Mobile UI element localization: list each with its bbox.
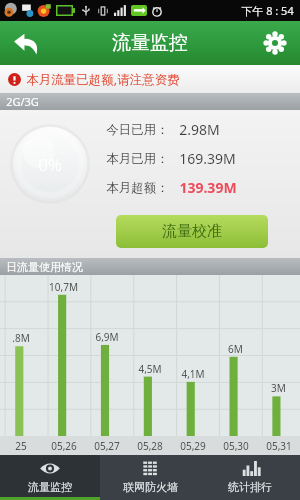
button[interactable]: Settings <box>250 21 300 65</box>
button[interactable]: 流量校准 <box>116 215 268 248</box>
staticText: 0% <box>38 153 62 176</box>
staticText: 6M <box>228 342 243 356</box>
staticText: 05,30 <box>223 439 249 453</box>
button[interactable]: 统计排行 <box>200 455 300 500</box>
staticText: 05,29 <box>180 439 206 453</box>
staticText: 4,5M <box>138 362 162 376</box>
staticText: 2.98M <box>179 120 220 139</box>
staticText: 本月超额： <box>106 180 169 196</box>
staticText: 今日已用： <box>106 122 169 138</box>
staticText: 05,31 <box>266 439 292 453</box>
button[interactable]: 流量监控 <box>0 455 100 500</box>
staticText: 流量校准 <box>162 222 222 241</box>
staticText: 日流量使用情况 <box>6 260 83 274</box>
staticText: 3M <box>271 381 286 395</box>
staticText: 联网防火墙 <box>123 480 178 494</box>
staticText: 4,1M <box>181 367 205 381</box>
staticText: 2G/3G <box>6 94 39 109</box>
staticText: 本月已用： <box>106 151 169 167</box>
staticText: 05,28 <box>137 439 163 453</box>
staticText: 6,9M <box>95 330 119 344</box>
staticText: 流量监控 <box>112 31 188 55</box>
staticText: 10,7M <box>49 280 78 294</box>
staticText: 下午 8 : 54 <box>241 3 294 18</box>
button[interactable]: 联网防火墙 <box>100 455 200 500</box>
button[interactable]: Back <box>0 21 52 65</box>
staticText: 流量监控 <box>28 480 72 494</box>
staticText: .8M <box>12 331 30 345</box>
staticText: 本月流量已超额,请注意资费 <box>26 71 180 88</box>
staticText: 139.39M <box>179 178 237 197</box>
staticText: 05,26 <box>51 439 77 453</box>
staticText: 统计排行 <box>228 480 272 494</box>
staticText: 25 <box>15 439 27 453</box>
staticText: 05,27 <box>94 439 120 453</box>
staticText: 169.39M <box>179 149 236 168</box>
